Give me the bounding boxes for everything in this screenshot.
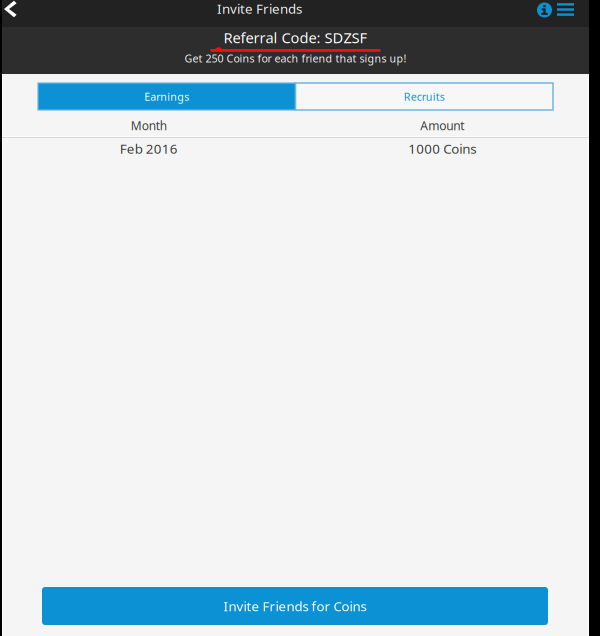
button[interactable]: Back (2, 0, 26, 27)
button[interactable]: Invite Friends for Coins (42, 587, 548, 625)
staticText: Referral Code: SDZSF (223, 28, 367, 47)
button[interactable]: Recruits (295, 83, 553, 110)
staticText: Recruits (404, 89, 445, 104)
staticText: 1000 Coins (408, 140, 476, 157)
staticText: Earnings (144, 89, 189, 104)
button[interactable]: Information (534, 0, 555, 27)
staticText: Feb 2016 (120, 140, 178, 157)
staticText: Amount (420, 117, 464, 133)
button[interactable]: Menu (555, 0, 576, 27)
staticText: Month (131, 117, 167, 133)
staticText: Invite Friends (217, 0, 302, 17)
button[interactable]: Earnings (38, 83, 295, 110)
staticText: Get 250 Coins for each friend that signs… (184, 51, 406, 65)
staticText: Invite Friends for Coins (223, 597, 366, 615)
